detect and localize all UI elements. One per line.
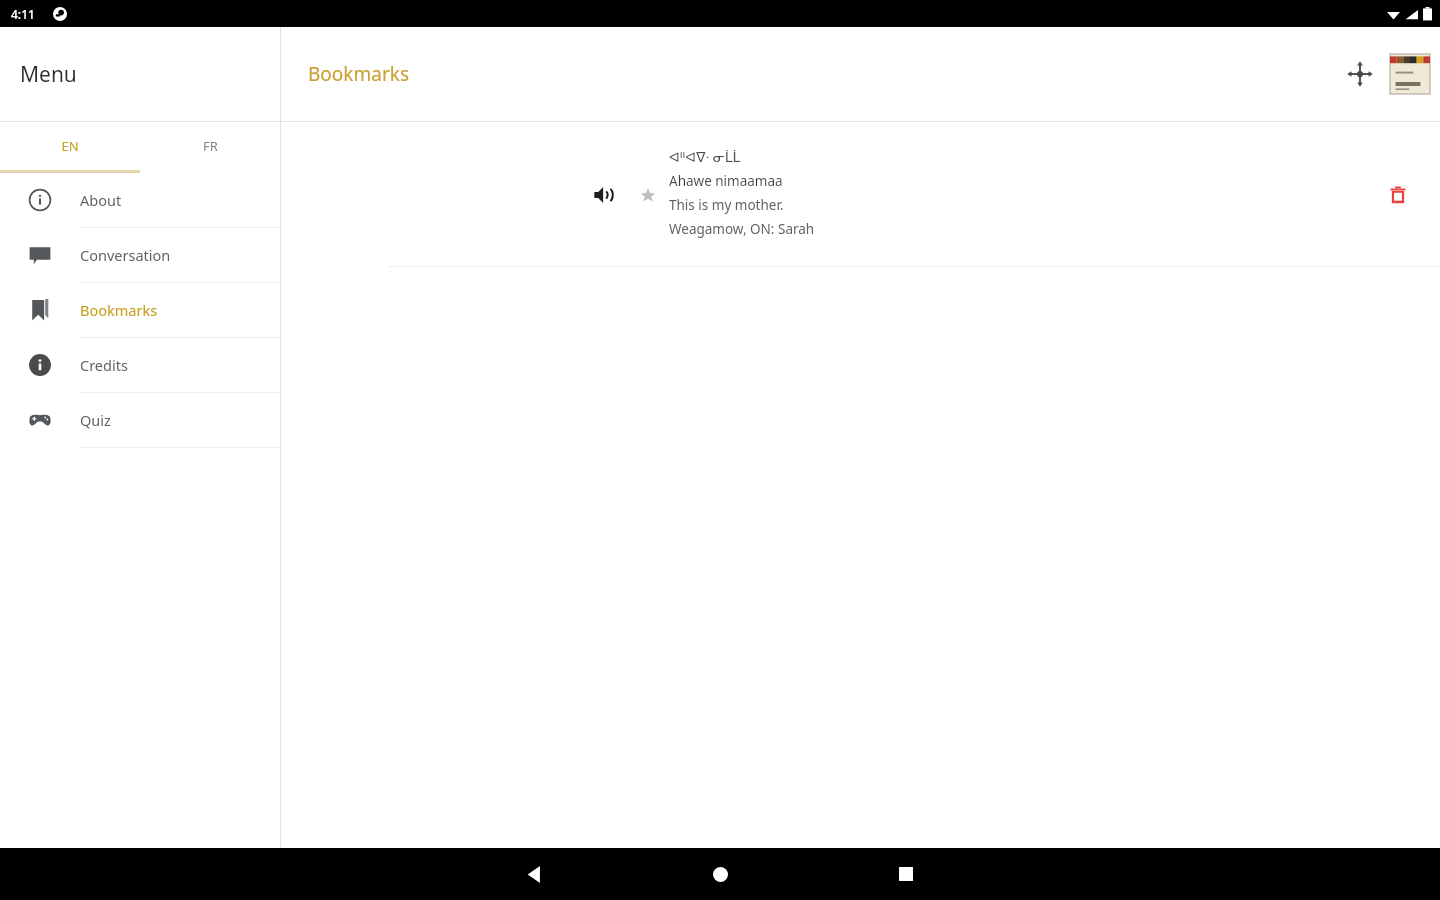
staticText: FR xyxy=(203,137,218,155)
staticText: 4:11 xyxy=(11,6,35,22)
button[interactable]: Quiz xyxy=(0,393,280,447)
button[interactable]: Recents xyxy=(880,848,932,900)
staticText: Bookmarks xyxy=(308,61,410,87)
button[interactable]: Credits xyxy=(0,338,280,392)
staticText: ᐊᐦᐊᐁᐧ ᓂᒫᒫ xyxy=(669,147,741,166)
button[interactable]: Conversation xyxy=(0,228,280,282)
staticText: Conversation xyxy=(80,245,171,265)
staticText: This is my mother. xyxy=(669,196,784,214)
button[interactable]: FR xyxy=(140,122,280,170)
button[interactable]: EN xyxy=(0,122,140,170)
button[interactable]: Play audio xyxy=(281,122,1440,267)
staticText: EN xyxy=(61,137,79,155)
staticText: About xyxy=(80,190,122,210)
button[interactable]: App logo xyxy=(1388,52,1432,96)
staticText: Credits xyxy=(80,355,128,375)
button[interactable]: Back xyxy=(508,848,560,900)
button[interactable]: Move xyxy=(1336,50,1384,98)
staticText: Quiz xyxy=(80,410,111,430)
button[interactable]: Home xyxy=(694,848,746,900)
button[interactable]: Bookmarks xyxy=(0,283,280,337)
button[interactable]: Play audio xyxy=(586,177,622,213)
staticText: Menu xyxy=(20,60,77,89)
button[interactable]: Delete bookmark xyxy=(1378,175,1418,215)
staticText: Bookmarks xyxy=(80,300,158,320)
button[interactable]: About xyxy=(0,173,280,227)
staticText: Ahawe nimaamaa xyxy=(669,172,783,190)
staticText: Weagamow, ON: Sarah xyxy=(669,220,815,238)
